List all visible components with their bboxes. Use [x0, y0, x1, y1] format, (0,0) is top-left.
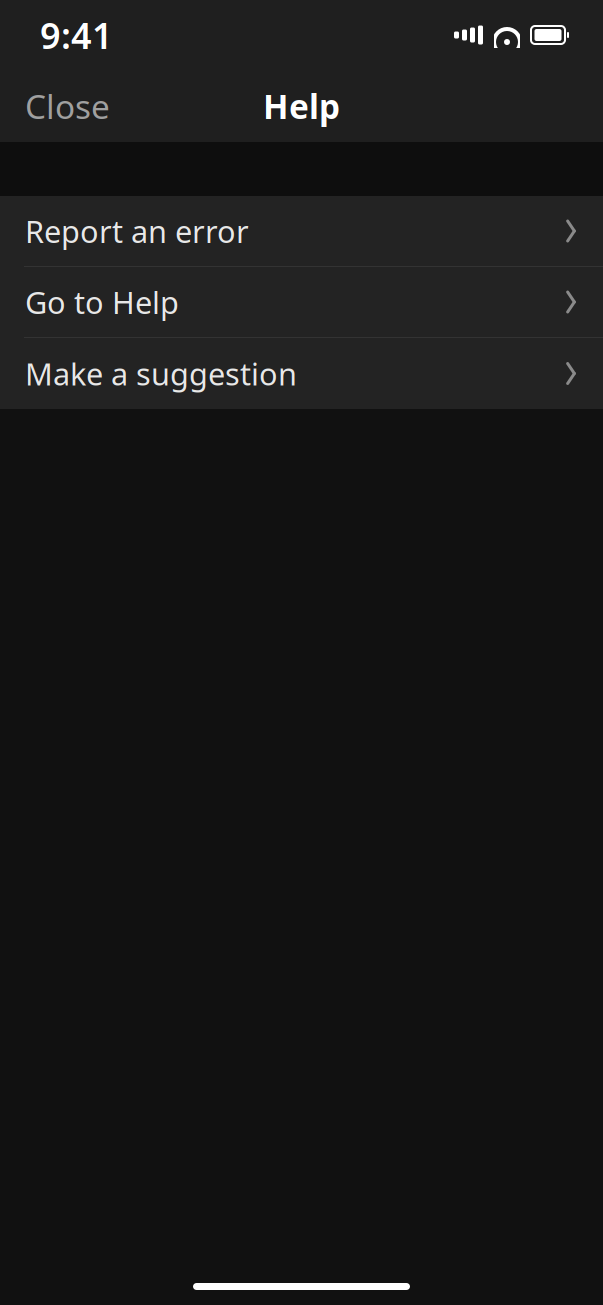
staticText: Report an error	[25, 211, 249, 251]
staticText: Help	[263, 84, 340, 128]
button[interactable]: Close	[0, 66, 135, 146]
button[interactable]: Go to Help	[0, 267, 603, 338]
staticText: Close	[25, 84, 110, 128]
staticText: Go to Help	[25, 282, 179, 322]
staticText: 9:41	[40, 11, 113, 59]
button[interactable]: Report an error	[0, 196, 603, 267]
staticText: Make a suggestion	[25, 353, 297, 394]
button[interactable]: Make a suggestion	[0, 338, 603, 409]
